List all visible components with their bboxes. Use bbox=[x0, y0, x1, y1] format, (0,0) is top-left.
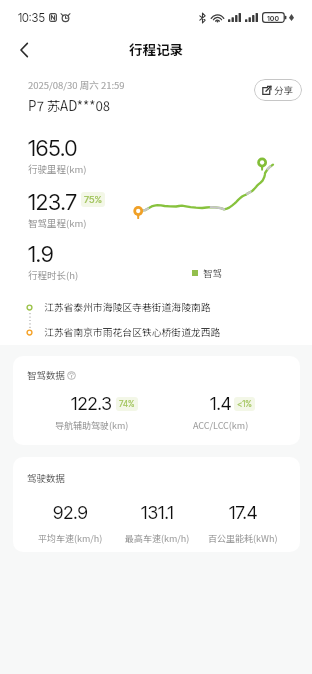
staticText: P7 苏AD***08 bbox=[28, 96, 111, 115]
staticText: <1% bbox=[237, 399, 252, 409]
button[interactable]: 分享 bbox=[254, 79, 302, 101]
staticText: 分享 bbox=[274, 83, 294, 97]
button[interactable]: Back bbox=[6, 36, 41, 64]
staticText: 17.4 bbox=[229, 502, 258, 524]
staticText: 2025/08/30 周六 21:59 bbox=[28, 78, 125, 92]
staticText: 江苏省南京市雨花台区铁心桥街道龙西路 bbox=[44, 325, 221, 339]
staticText: 平均车速(km/h) bbox=[38, 532, 103, 545]
staticText: 百公里能耗(kWh) bbox=[208, 532, 278, 545]
staticText: 1.9 bbox=[28, 241, 54, 268]
staticText: 江苏省泰州市海陵区寺巷街道海陵南路 bbox=[44, 300, 211, 314]
staticText: 75% bbox=[84, 194, 102, 205]
staticText: 行程记录 bbox=[129, 39, 183, 59]
staticText: ACC/LCC(km) bbox=[193, 419, 249, 432]
staticText: 行程时长(h) bbox=[28, 268, 79, 282]
staticText: 100 bbox=[267, 14, 279, 22]
staticText: 智驾 bbox=[203, 266, 223, 280]
staticText: 行驶里程(km) bbox=[28, 162, 87, 176]
staticText: 1.4 bbox=[210, 393, 232, 415]
staticText: 92.9 bbox=[53, 502, 88, 524]
staticText: 最高车速(km/h) bbox=[125, 532, 190, 545]
staticText: 123.7 bbox=[28, 189, 77, 216]
staticText: 131.1 bbox=[141, 502, 174, 524]
staticText: 驾驶数据 bbox=[27, 471, 66, 485]
staticText: 74% bbox=[119, 399, 135, 409]
staticText: 智驾里程(km) bbox=[28, 216, 87, 230]
staticText: 智驾数据 bbox=[27, 368, 66, 382]
staticText: 导航辅助驾驶(km) bbox=[55, 419, 129, 432]
staticText: 165.0 bbox=[28, 135, 78, 162]
staticText: 122.3 bbox=[71, 393, 112, 415]
staticText: 10:35 bbox=[18, 11, 45, 25]
